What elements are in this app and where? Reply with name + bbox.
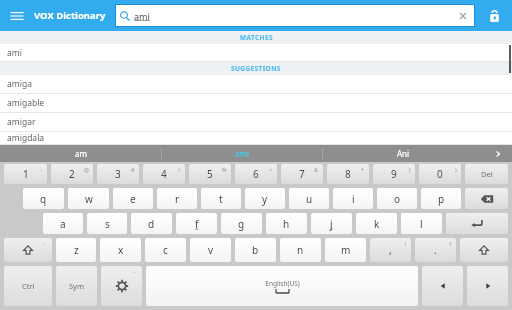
button[interactable]: b	[235, 238, 276, 262]
staticText: 1	[23, 167, 29, 181]
button[interactable]: Move cursor right	[467, 266, 508, 306]
button[interactable]: More suggestions	[484, 145, 512, 162]
button[interactable]: .	[415, 238, 456, 262]
button[interactable]: Space, English(US)	[146, 266, 418, 306]
staticText: l	[420, 217, 423, 231]
button[interactable]: n	[280, 238, 321, 262]
staticText: o	[394, 192, 401, 206]
button[interactable]: 0	[419, 164, 461, 184]
staticText: n	[297, 243, 304, 257]
staticText: Sym	[69, 281, 84, 291]
button[interactable]: z	[56, 238, 96, 262]
staticText: .	[434, 243, 437, 257]
button[interactable]: y	[245, 188, 285, 209]
button[interactable]: amiga	[0, 75, 512, 94]
button[interactable]: g	[221, 213, 262, 234]
staticText: ^	[269, 166, 273, 173]
button[interactable]: c	[145, 238, 186, 262]
button[interactable]: Enter	[446, 213, 508, 234]
button[interactable]: k	[356, 213, 397, 234]
button[interactable]: Keyboard settings	[101, 266, 142, 306]
button[interactable]: ami	[162, 145, 323, 162]
button[interactable]: e	[113, 188, 153, 209]
button[interactable]: u	[289, 188, 329, 209]
button[interactable]: Premium content locked	[482, 4, 506, 28]
button[interactable]: 9	[373, 164, 415, 184]
staticText: ami	[235, 148, 250, 159]
button[interactable]: 3	[97, 164, 139, 184]
button[interactable]: p	[421, 188, 461, 209]
staticText: u	[306, 192, 313, 206]
button[interactable]: 4	[143, 164, 185, 184]
staticText: !	[405, 240, 407, 247]
button[interactable]: Open navigation menu	[6, 5, 28, 27]
button[interactable]: t	[201, 188, 241, 209]
staticText: m	[341, 243, 351, 257]
button[interactable]: Del	[465, 164, 508, 184]
button[interactable]: ,	[370, 238, 411, 262]
staticText: d	[148, 217, 155, 231]
staticText: )	[455, 166, 457, 173]
button[interactable]: 8	[327, 164, 369, 184]
button[interactable]: Shift	[460, 238, 508, 262]
button[interactable]: amigdala	[0, 132, 512, 145]
staticText: x	[118, 243, 124, 257]
staticText: amigable	[7, 97, 45, 109]
button[interactable]: d	[131, 213, 172, 234]
staticText: i	[352, 192, 355, 206]
button[interactable]: v	[190, 238, 231, 262]
button[interactable]: Move cursor left	[422, 266, 463, 306]
button[interactable]: s	[87, 213, 127, 234]
staticText: 9	[391, 167, 397, 181]
staticText: *	[361, 166, 365, 173]
button[interactable]: Ani	[323, 145, 484, 162]
button[interactable]: 2	[51, 164, 93, 184]
staticText: k	[374, 217, 380, 231]
button[interactable]: ami	[115, 4, 475, 27]
staticText: 3	[115, 167, 121, 181]
staticText: MATCHES	[240, 33, 273, 42]
button[interactable]: 1	[4, 164, 47, 184]
button[interactable]: Ctrl	[4, 266, 52, 306]
button[interactable]: Clear search	[456, 9, 470, 23]
staticText: VOX Dictionary	[34, 9, 106, 22]
button[interactable]: l	[401, 213, 442, 234]
staticText: 2	[69, 167, 75, 181]
staticText: 7	[299, 167, 305, 181]
button[interactable]: 7	[281, 164, 323, 184]
button[interactable]: amigable	[0, 94, 512, 113]
button[interactable]: f	[176, 213, 217, 234]
staticText: b	[252, 243, 259, 257]
button[interactable]: r	[157, 188, 197, 209]
button[interactable]: 6	[235, 164, 277, 184]
button[interactable]: amigar	[0, 113, 512, 132]
button[interactable]: Sym	[56, 266, 97, 306]
staticText: v	[208, 243, 214, 257]
button[interactable]: am	[0, 145, 162, 162]
staticText: g	[238, 217, 245, 231]
staticText: h	[283, 217, 290, 231]
button[interactable]: Shift	[4, 238, 52, 262]
button[interactable]: h	[266, 213, 307, 234]
staticText: p	[438, 192, 445, 206]
button[interactable]: w	[68, 188, 109, 209]
staticText: %	[222, 166, 227, 173]
staticText: Ani	[397, 148, 410, 159]
button[interactable]: m	[325, 238, 366, 262]
staticText: r	[175, 192, 180, 206]
staticText: w	[85, 192, 93, 206]
button[interactable]: j	[311, 213, 352, 234]
staticText: Ctrl	[22, 281, 35, 291]
button[interactable]: ami	[0, 44, 512, 62]
button[interactable]: 5	[189, 164, 231, 184]
staticText: Del	[481, 169, 493, 179]
button[interactable]: q	[23, 188, 64, 209]
staticText: 5	[207, 167, 213, 181]
staticText: (	[409, 166, 411, 173]
button[interactable]: i	[333, 188, 373, 209]
staticText: ami	[7, 47, 22, 59]
button[interactable]: x	[100, 238, 141, 262]
button[interactable]: a	[43, 213, 83, 234]
button[interactable]: o	[377, 188, 417, 209]
button[interactable]: Backspace	[465, 188, 508, 209]
